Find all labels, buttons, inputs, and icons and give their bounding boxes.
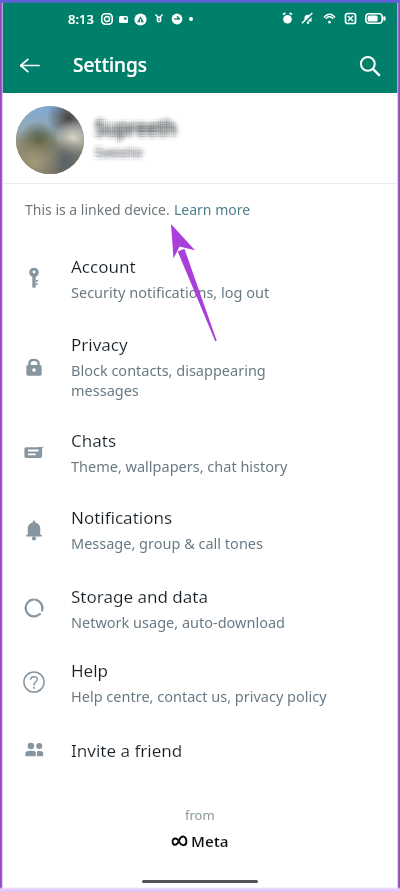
staticText: Sweetie <box>99 146 147 164</box>
staticText: Sweetie <box>93 140 141 158</box>
staticText: Supreeth <box>91 115 173 141</box>
staticText: Sweetie <box>90 143 138 161</box>
staticText: Sweetie <box>100 146 148 164</box>
staticText: Supreeth <box>93 112 175 138</box>
staticText: Sweetie <box>91 142 139 160</box>
staticText: This is a linked device. <box>25 200 174 219</box>
staticText: Sweetie <box>97 142 145 160</box>
staticText: Sweetie <box>99 143 147 161</box>
staticText: Sweetie <box>97 139 145 157</box>
staticText: Sweetie <box>99 140 147 158</box>
staticText: Sweetie <box>91 144 139 162</box>
button[interactable]: Account <box>0 234 400 322</box>
staticText: Invite a friend <box>71 739 183 762</box>
staticText: Supreeth <box>89 117 171 143</box>
staticText: Supreeth <box>99 115 181 141</box>
staticText: Sweetie <box>95 146 143 164</box>
staticText: Supreeth <box>95 118 177 144</box>
staticText: Storage and data <box>71 585 209 608</box>
staticText: Supreeth <box>97 110 179 136</box>
staticText: Sweetie <box>99 139 147 157</box>
staticText: Sweetie <box>100 140 148 158</box>
staticText: Supreeth <box>93 109 175 135</box>
staticText: Supreeth <box>93 110 175 136</box>
staticText: Supreeth <box>93 115 175 141</box>
staticText: Supreeth <box>97 120 179 146</box>
staticText: Supreeth <box>89 115 171 141</box>
button[interactable]: Supreeth <box>0 93 400 183</box>
button[interactable]: Search <box>346 42 392 88</box>
staticText: Supreeth <box>99 110 181 136</box>
staticText: Supreeth <box>91 113 173 139</box>
staticText: Supreeth <box>91 117 173 143</box>
staticText: Supreeth <box>99 118 181 144</box>
staticText: Sweetie <box>91 147 139 165</box>
staticText: Sweetie <box>90 146 138 164</box>
staticText: Supreeth <box>91 112 173 138</box>
staticText: Sweetie <box>91 139 139 157</box>
button[interactable]: Learn more <box>174 200 251 219</box>
staticText: Supreeth <box>91 118 173 144</box>
button[interactable]: Privacy <box>0 322 400 412</box>
staticText: Sweetie <box>99 147 147 165</box>
staticText: Supreeth <box>95 113 177 139</box>
staticText: Learn more <box>174 200 251 219</box>
staticText: Supreeth <box>93 117 175 143</box>
staticText: Account <box>71 255 136 278</box>
staticText: Sweetie <box>90 142 138 160</box>
staticText: from <box>185 806 215 824</box>
staticText: Theme, wallpapers, chat history <box>71 456 288 476</box>
staticText: Sweetie <box>97 140 145 158</box>
staticText: Supreeth <box>93 120 175 146</box>
staticText: Sweetie <box>100 142 148 160</box>
staticText: Supreeth <box>95 110 177 136</box>
staticText: Sweetie <box>95 143 143 161</box>
staticText: Sweetie <box>97 138 145 156</box>
staticText: Sweetie <box>95 138 143 156</box>
staticText: Sweetie <box>90 144 138 162</box>
staticText: 8:13 <box>68 10 94 28</box>
staticText: Sweetie <box>95 144 143 162</box>
staticText: Sweetie <box>99 144 147 162</box>
staticText: Supreeth <box>91 110 173 136</box>
button[interactable]: Help <box>0 649 400 715</box>
staticText: Supreeth <box>99 112 181 138</box>
staticText: Sweetie <box>93 144 141 162</box>
button[interactable]: Notifications <box>0 492 400 567</box>
staticText: Sweetie <box>93 146 141 164</box>
staticText: Supreeth <box>101 117 183 143</box>
staticText: Sweetie <box>95 147 143 165</box>
staticText: Chats <box>71 429 117 452</box>
staticText: Supreeth <box>93 118 175 144</box>
staticText: Sweetie <box>97 147 145 165</box>
staticText: Sweetie <box>91 146 139 164</box>
button[interactable]: Chats <box>0 412 400 492</box>
staticText: Sweetie <box>93 147 141 165</box>
staticText: Supreeth <box>95 120 177 146</box>
button[interactable]: Storage and data <box>0 567 400 649</box>
button[interactable]: Back <box>6 42 52 88</box>
staticText: Help centre, contact us, privacy policy <box>71 686 327 706</box>
button[interactable]: Invite a friend <box>0 715 400 785</box>
staticText: Supreeth <box>101 118 183 144</box>
staticText: Sweetie <box>97 144 145 162</box>
staticText: Sweetie <box>95 142 143 160</box>
staticText: Supreeth <box>99 117 181 143</box>
staticText: Supreeth <box>93 121 175 147</box>
staticText: Sweetie <box>90 140 138 158</box>
staticText: Supreeth <box>93 113 175 139</box>
staticText: Message, group & call tones <box>71 533 263 553</box>
staticText: Block contacts, disappearing messages <box>71 360 266 401</box>
staticText: Sweetie <box>91 143 139 161</box>
staticText: Sweetie <box>97 143 145 161</box>
staticText: Sweetie <box>93 138 141 156</box>
staticText: Sweetie <box>100 144 148 162</box>
staticText: Sweetie <box>97 146 145 164</box>
staticText: Supreeth <box>89 113 171 139</box>
staticText: Notifications <box>71 506 173 529</box>
staticText: Supreeth <box>95 121 177 147</box>
staticText: Supreeth <box>99 120 181 146</box>
staticText: Supreeth <box>101 115 183 141</box>
staticText: Supreeth <box>89 118 171 144</box>
staticText: Supreeth <box>95 115 177 141</box>
